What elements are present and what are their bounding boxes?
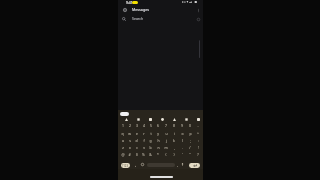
button[interactable]: a xyxy=(119,137,126,144)
button[interactable]: v xyxy=(140,144,147,151)
button[interactable]: GIF xyxy=(135,116,141,122)
staticText: v xyxy=(143,145,145,150)
staticText: r xyxy=(143,131,145,136)
button[interactable]: t xyxy=(147,130,154,137)
button[interactable]: ? xyxy=(194,151,202,158)
button[interactable]: z xyxy=(119,144,126,151)
button[interactable]: Search xyxy=(118,15,203,22)
staticText: c xyxy=(136,145,138,150)
button[interactable]: q xyxy=(119,130,126,137)
staticText: 8 xyxy=(173,123,175,128)
button[interactable]: Messages xyxy=(118,6,203,13)
button[interactable]: g xyxy=(147,137,154,144)
button[interactable]: / xyxy=(186,144,194,151)
button[interactable]: , xyxy=(170,144,178,151)
button[interactable]: ^ xyxy=(194,130,202,137)
button[interactable]: h xyxy=(154,137,162,144)
button[interactable]: o xyxy=(178,130,186,137)
staticText: ? xyxy=(197,152,199,157)
button[interactable]: 2 xyxy=(126,122,133,129)
button[interactable]: @ xyxy=(119,151,126,158)
button[interactable]: d xyxy=(133,137,140,144)
button[interactable]: Settings xyxy=(171,116,177,122)
button[interactable]: i xyxy=(170,130,178,137)
staticText: @ xyxy=(121,152,125,157)
button[interactable]: ( xyxy=(162,151,170,158)
button[interactable]: Period xyxy=(175,162,180,167)
button[interactable]: r xyxy=(140,130,147,137)
button[interactable]: ) xyxy=(170,151,178,158)
staticText: 2 xyxy=(129,123,131,128)
button[interactable]: 3 xyxy=(133,122,140,129)
staticText: i xyxy=(174,131,175,136)
staticText: j xyxy=(166,138,167,143)
button[interactable]: 5 xyxy=(147,122,154,129)
staticText: Messages xyxy=(132,7,149,12)
button[interactable]: c xyxy=(133,144,140,151)
button[interactable]: 4 xyxy=(140,122,147,129)
staticText: 1 xyxy=(122,123,124,128)
button[interactable]: * xyxy=(154,151,162,158)
button[interactable]: Search xyxy=(195,116,201,122)
button[interactable]: # xyxy=(126,151,133,158)
button[interactable]: 7 xyxy=(162,122,170,129)
button[interactable]: ' xyxy=(178,151,186,158)
button[interactable]: % xyxy=(140,151,147,158)
button[interactable]: w xyxy=(126,130,133,137)
button[interactable]: k xyxy=(170,137,178,144)
staticText: l xyxy=(182,138,183,143)
button[interactable]: : xyxy=(194,137,202,144)
button[interactable]: 6 xyxy=(154,122,162,129)
button[interactable]: j xyxy=(162,137,170,144)
button[interactable]: l xyxy=(178,137,186,144)
button[interactable]: ! xyxy=(194,144,202,151)
button[interactable]: Emoji xyxy=(123,116,129,122)
staticText: q xyxy=(121,131,124,136)
button[interactable]: e xyxy=(133,130,140,137)
button[interactable]: Clipboard xyxy=(159,116,165,122)
button[interactable]: Comma xyxy=(133,162,138,167)
staticText: ( xyxy=(165,152,167,157)
button[interactable]: Account xyxy=(195,16,201,22)
button[interactable]: p xyxy=(186,130,194,137)
button[interactable]: 9 xyxy=(178,122,186,129)
staticText: f xyxy=(143,138,145,143)
button[interactable]: x xyxy=(126,144,133,151)
staticText: : xyxy=(198,138,199,143)
button[interactable]: Voice input xyxy=(180,162,185,167)
button[interactable]: Emoji xyxy=(140,162,145,167)
staticText: 0 xyxy=(189,123,191,128)
button[interactable]: Enter xyxy=(189,163,200,168)
button[interactable] xyxy=(120,112,129,116)
button[interactable]: s xyxy=(126,137,133,144)
staticText: . xyxy=(182,145,183,150)
button[interactable]: f xyxy=(140,137,147,144)
button[interactable]: n xyxy=(154,144,162,151)
button[interactable]: ; xyxy=(186,137,194,144)
button[interactable]: m xyxy=(162,144,170,151)
button[interactable]: b xyxy=(147,144,154,151)
button[interactable]: 1 xyxy=(119,122,126,129)
button[interactable]: 0 xyxy=(186,122,194,129)
button[interactable]: y xyxy=(154,130,162,137)
button[interactable]: Translate xyxy=(183,116,189,122)
staticText: 9:41 xyxy=(126,0,133,4)
button[interactable]: ?123 xyxy=(121,163,130,168)
staticText: , xyxy=(174,145,175,150)
button[interactable]: More options xyxy=(195,7,201,13)
staticText: # xyxy=(128,152,131,157)
staticText: 9 xyxy=(181,123,183,128)
button[interactable]: - xyxy=(194,122,202,129)
staticText: . xyxy=(177,162,179,167)
staticText: $ xyxy=(136,152,138,157)
button[interactable]: $ xyxy=(133,151,140,158)
button[interactable]: " xyxy=(186,151,194,158)
button[interactable]: u xyxy=(162,130,170,137)
button[interactable]: Sticker xyxy=(147,116,153,122)
button[interactable]: . xyxy=(178,144,186,151)
staticText: - xyxy=(197,123,199,128)
button[interactable]: 8 xyxy=(170,122,178,129)
staticText: m xyxy=(164,145,168,150)
button[interactable]: & xyxy=(147,151,154,158)
